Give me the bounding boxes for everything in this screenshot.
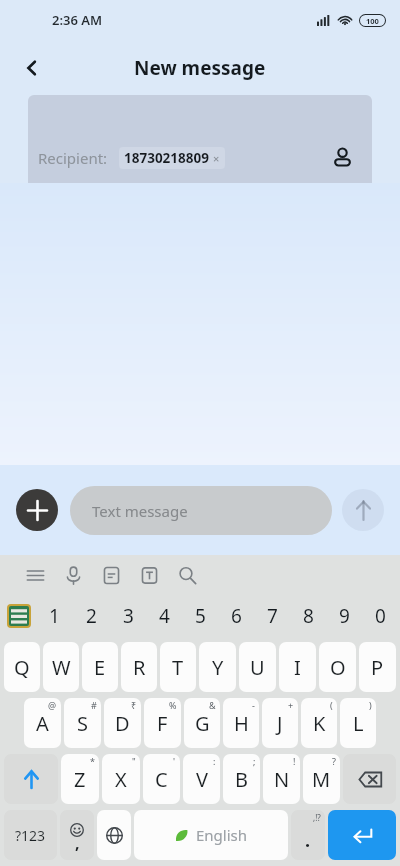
- staticText: &: [209, 699, 216, 711]
- staticText: U: [250, 654, 265, 681]
- button[interactable]: Backspace: [343, 754, 396, 804]
- button[interactable]: N: [263, 754, 300, 804]
- staticText: F: [157, 710, 168, 737]
- button[interactable]: 9: [326, 594, 362, 638]
- button[interactable]: Y: [199, 642, 236, 692]
- button[interactable]: Change language: [97, 810, 131, 860]
- staticText: P: [371, 654, 384, 681]
- staticText: X: [115, 766, 127, 793]
- staticText: English: [196, 825, 248, 845]
- button[interactable]: E: [82, 642, 118, 692]
- staticText: 2: [86, 603, 97, 629]
- button[interactable]: R: [121, 642, 157, 692]
- staticText: ,: [75, 832, 80, 854]
- button[interactable]: L: [340, 698, 376, 748]
- staticText: N: [274, 766, 290, 793]
- button[interactable]: Choose contact: [322, 137, 362, 177]
- button[interactable]: Enter: [328, 810, 396, 860]
- button[interactable]: Send: [342, 489, 384, 531]
- button[interactable]: Text message: [70, 486, 332, 535]
- button[interactable]: D: [104, 698, 141, 748]
- staticText: ?: [332, 755, 336, 767]
- button[interactable]: 18730218809: [124, 149, 220, 167]
- button[interactable]: 1: [36, 594, 73, 638]
- staticText: .: [305, 828, 311, 853]
- staticText: 9: [339, 603, 350, 629]
- button[interactable]: Voice input: [54, 556, 92, 594]
- staticText: B: [235, 766, 248, 793]
- button[interactable]: Back: [10, 46, 54, 90]
- staticText: Z: [74, 766, 86, 793]
- button[interactable]: M: [303, 754, 340, 804]
- button[interactable]: Add attachment: [16, 489, 58, 531]
- staticText: L: [353, 710, 364, 737]
- button[interactable]: ?123: [4, 810, 57, 860]
- button[interactable]: S: [64, 698, 101, 748]
- staticText: Q: [14, 654, 30, 681]
- staticText: %: [169, 699, 177, 711]
- staticText: ': [173, 755, 176, 767]
- staticText: K: [313, 710, 326, 737]
- staticText: V: [196, 766, 208, 793]
- button[interactable]: F: [144, 698, 181, 748]
- button[interactable]: G: [184, 698, 220, 748]
- button[interactable]: K: [301, 698, 337, 748]
- button[interactable]: 4: [146, 594, 182, 638]
- button[interactable]: Recipient:: [28, 95, 372, 183]
- staticText: 18730218809: [124, 149, 209, 167]
- staticText: T: [172, 654, 184, 681]
- button[interactable]: Period: [291, 810, 325, 860]
- button[interactable]: V: [183, 754, 220, 804]
- button[interactable]: B: [223, 754, 260, 804]
- staticText: Y: [212, 654, 224, 681]
- button[interactable]: W: [43, 642, 79, 692]
- button[interactable]: X: [102, 754, 140, 804]
- button[interactable]: 3: [110, 594, 146, 638]
- button[interactable]: Z: [61, 754, 99, 804]
- button[interactable]: Search: [168, 556, 206, 594]
- button[interactable]: Shift: [4, 754, 58, 804]
- staticText: -: [252, 699, 255, 711]
- button[interactable]: English: [134, 810, 288, 860]
- button[interactable]: Text: [130, 556, 168, 594]
- button[interactable]: Stickers: [7, 604, 31, 628]
- button[interactable]: J: [262, 698, 298, 748]
- button[interactable]: 8: [290, 594, 326, 638]
- staticText: ₹: [131, 699, 137, 711]
- staticText: 2:36 AM: [52, 11, 103, 29]
- button[interactable]: O: [319, 642, 356, 692]
- button[interactable]: Emoji and comma: [60, 810, 94, 860]
- button[interactable]: A: [24, 698, 61, 748]
- staticText: 0: [375, 603, 386, 629]
- staticText: E: [94, 654, 106, 681]
- staticText: G: [195, 710, 210, 737]
- button[interactable]: 5: [182, 594, 218, 638]
- button[interactable]: Clipboard: [92, 556, 130, 594]
- staticText: J: [277, 710, 283, 737]
- staticText: C: [155, 766, 168, 793]
- staticText: A: [36, 710, 49, 737]
- staticText: 8: [303, 603, 314, 629]
- button[interactable]: T: [160, 642, 196, 692]
- staticText: 6: [231, 603, 242, 629]
- button[interactable]: 2: [73, 594, 110, 638]
- staticText: H: [234, 710, 249, 737]
- button[interactable]: 6: [218, 594, 254, 638]
- staticText: ": [132, 755, 136, 767]
- staticText: ;: [253, 755, 256, 767]
- staticText: M: [312, 766, 331, 793]
- staticText: 3: [123, 603, 134, 629]
- staticText: ?123: [15, 826, 46, 845]
- button[interactable]: 0: [362, 594, 398, 638]
- staticText: Recipient:: [38, 148, 108, 168]
- button[interactable]: 7: [254, 594, 290, 638]
- staticText: 4: [159, 603, 170, 629]
- button[interactable]: Q: [4, 642, 40, 692]
- staticText: 1: [49, 603, 60, 629]
- button[interactable]: I: [279, 642, 316, 692]
- button[interactable]: Menu: [16, 556, 54, 594]
- button[interactable]: P: [359, 642, 396, 692]
- button[interactable]: C: [143, 754, 180, 804]
- button[interactable]: H: [223, 698, 259, 748]
- button[interactable]: U: [239, 642, 276, 692]
